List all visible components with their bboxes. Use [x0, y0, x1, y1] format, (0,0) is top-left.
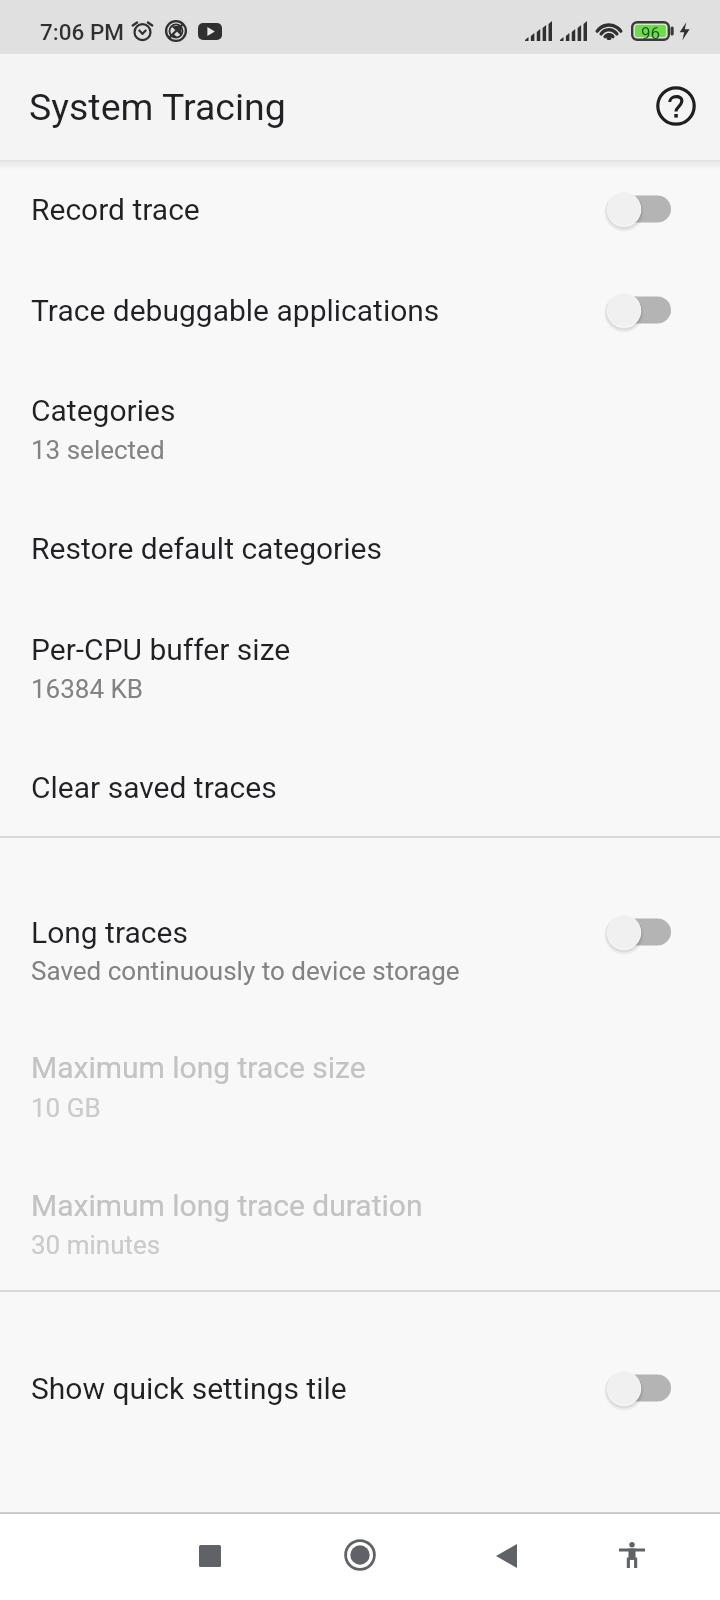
staticText: 13 selected	[31, 435, 165, 465]
staticText: 10 GB	[31, 1093, 101, 1123]
staticText: Trace debuggable applications	[31, 293, 440, 328]
button[interactable]: Clear saved traces	[0, 738, 720, 838]
staticText: Clear saved traces	[31, 770, 277, 805]
button[interactable]: Long traces	[0, 883, 720, 1009]
staticText: Show quick settings tile	[31, 1371, 347, 1406]
staticText: Record trace	[31, 192, 200, 227]
button[interactable]: Toggle Record trace	[591, 179, 687, 239]
button[interactable]: Recent apps	[174, 1520, 246, 1592]
button[interactable]: Accessibility	[596, 1519, 668, 1591]
staticText: Saved continuously to device storage	[31, 956, 460, 986]
button[interactable]: Home	[324, 1519, 396, 1591]
button[interactable]: Toggle Long traces	[591, 902, 687, 962]
button[interactable]: Toggle Show quick settings tile	[591, 1358, 687, 1418]
staticText: Categories	[31, 393, 176, 428]
button[interactable]: Per-CPU buffer size	[0, 600, 720, 726]
button[interactable]: Toggle Trace debuggable applications	[591, 280, 687, 340]
button[interactable]: Maximum long trace size	[0, 1019, 720, 1145]
staticText: Per-CPU buffer size	[31, 632, 291, 667]
staticText: 30 minutes	[31, 1230, 161, 1260]
staticText: 7:06 PM	[40, 19, 124, 45]
button[interactable]: Categories	[0, 361, 720, 487]
staticText: Maximum long trace size	[31, 1050, 366, 1085]
staticText: Restore default categories	[31, 531, 382, 566]
staticText: System Tracing	[29, 85, 286, 129]
button[interactable]: Record trace	[0, 160, 720, 260]
button[interactable]: Show quick settings tile	[0, 1339, 720, 1439]
staticText: Maximum long trace duration	[31, 1188, 423, 1223]
button[interactable]: Back	[470, 1520, 542, 1592]
button[interactable]: Restore default categories	[0, 499, 720, 599]
button[interactable]: Maximum long trace duration	[0, 1156, 720, 1282]
button[interactable]: Trace debuggable applications	[0, 261, 720, 361]
staticText: 96	[641, 23, 661, 43]
button[interactable]: Help	[652, 82, 700, 130]
staticText: Long traces	[31, 915, 188, 950]
staticText: 16384 KB	[31, 674, 144, 704]
